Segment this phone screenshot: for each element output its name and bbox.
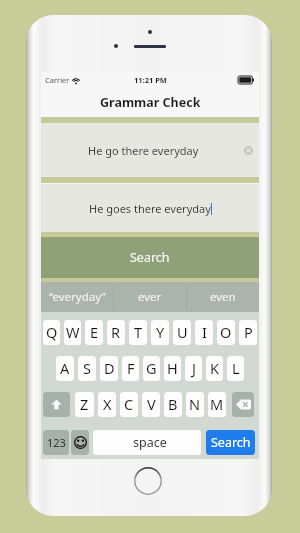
button[interactable]: “everyday” (41, 282, 113, 312)
button[interactable]: I (195, 320, 213, 345)
staticText: Q (46, 322, 58, 342)
button[interactable]: Emoji keyboard (71, 430, 89, 455)
staticText: V (147, 394, 156, 414)
staticText: Search (130, 249, 170, 266)
staticText: T (134, 322, 143, 342)
button[interactable]: space (93, 430, 201, 455)
staticText: Y (156, 322, 165, 342)
button[interactable]: Shift (43, 392, 70, 417)
staticText: L (232, 358, 240, 378)
button[interactable]: He goes there everyday (41, 184, 259, 233)
button[interactable]: T (129, 320, 147, 345)
button[interactable]: B (164, 392, 182, 417)
button[interactable]: Z (75, 392, 94, 417)
button[interactable]: even (187, 282, 259, 312)
button[interactable]: K (206, 356, 223, 381)
button[interactable]: O (217, 320, 235, 345)
staticText: M (210, 394, 224, 414)
button[interactable]: E (85, 320, 103, 345)
staticText: R (111, 322, 121, 342)
staticText: U (177, 322, 188, 342)
other: Home (134, 467, 162, 495)
button[interactable]: F (122, 356, 139, 381)
button[interactable]: G (143, 356, 160, 381)
button[interactable]: He go there everyday (41, 123, 259, 178)
button[interactable]: Backspace (232, 392, 254, 417)
button[interactable]: V (142, 392, 160, 417)
button[interactable]: Clear text (244, 146, 253, 155)
button[interactable]: Search (41, 237, 259, 278)
button[interactable]: R (107, 320, 125, 345)
staticText: P (244, 322, 253, 342)
staticText: B (168, 394, 178, 414)
staticText: Search (211, 434, 251, 451)
button[interactable]: D (100, 356, 118, 381)
staticText: C (124, 394, 134, 414)
staticText: Grammar Check (100, 94, 201, 111)
staticText: I (202, 322, 207, 342)
button[interactable]: 123 (43, 430, 69, 455)
button[interactable]: U (173, 320, 191, 345)
staticText: N (189, 394, 201, 414)
staticText: E (90, 322, 99, 342)
button[interactable]: C (120, 392, 138, 417)
staticText: F (127, 358, 135, 378)
staticText: S (83, 358, 91, 378)
button[interactable]: X (98, 392, 116, 417)
staticText: W (66, 322, 80, 342)
staticText: space (133, 434, 167, 451)
staticText: Z (80, 394, 89, 414)
staticText: X (103, 394, 112, 414)
button[interactable]: Y (151, 320, 169, 345)
staticText: O (220, 322, 232, 342)
staticText: 11:21 PM (134, 75, 167, 85)
staticText: ever (138, 289, 162, 305)
button[interactable]: ever (114, 282, 186, 312)
button[interactable]: Q (43, 320, 60, 345)
staticText: D (104, 358, 115, 378)
staticText: even (210, 289, 236, 305)
button[interactable]: Search (206, 430, 255, 455)
button[interactable]: A (56, 356, 74, 381)
button[interactable]: N (186, 392, 204, 417)
staticText: He goes there everyday (89, 201, 211, 216)
staticText: K (210, 358, 219, 378)
button[interactable]: M (208, 392, 226, 417)
button[interactable]: P (239, 320, 257, 345)
button[interactable]: L (227, 356, 244, 381)
staticText: A (60, 358, 70, 378)
staticText: J (192, 358, 196, 378)
button[interactable]: S (78, 356, 96, 381)
button[interactable]: H (164, 356, 181, 381)
button[interactable]: J (185, 356, 202, 381)
staticText: 123 (47, 435, 66, 450)
staticText: H (167, 358, 178, 378)
staticText: Carrier (45, 75, 70, 85)
staticText: “everyday” (49, 289, 106, 305)
staticText: G (146, 358, 157, 378)
staticText: He go there everyday (88, 143, 199, 158)
button[interactable]: W (64, 320, 81, 345)
